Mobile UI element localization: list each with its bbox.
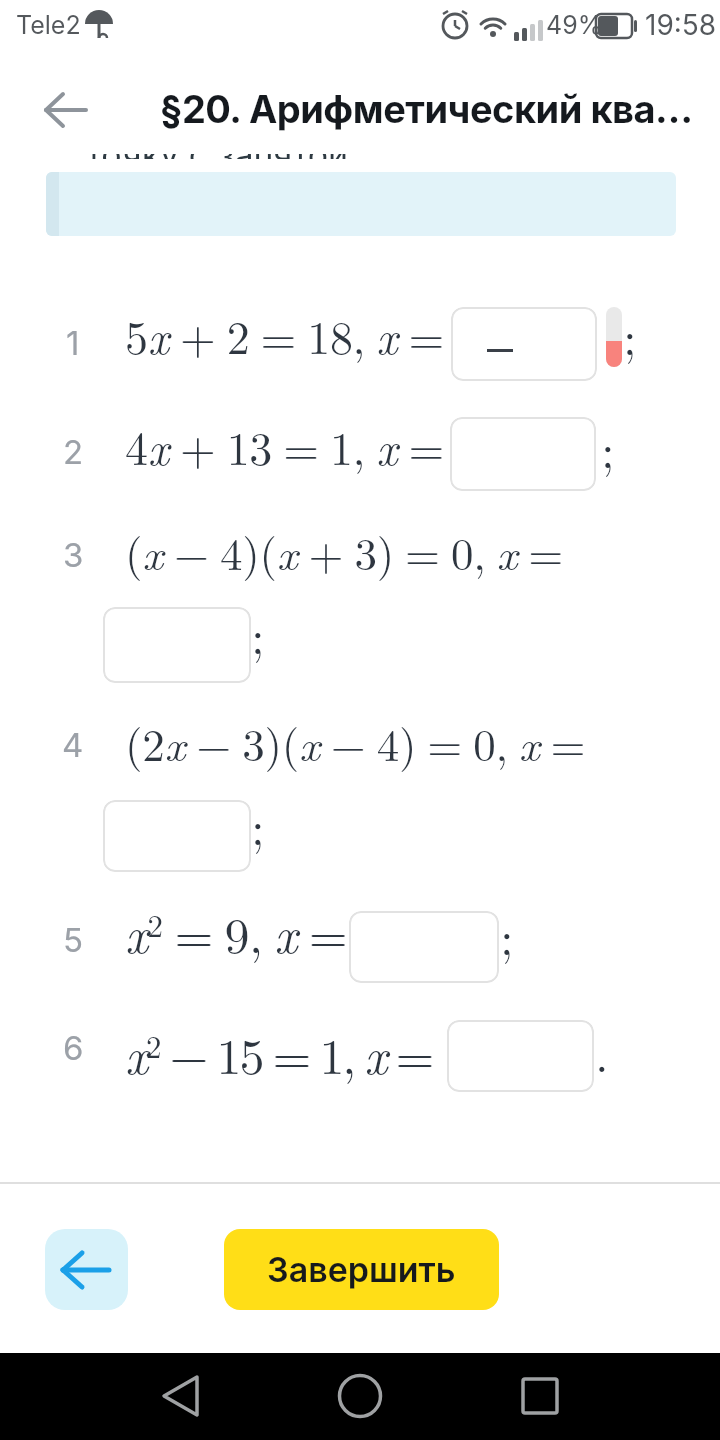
button[interactable]: Завершить (224, 1229, 499, 1310)
button[interactable] (120, 1353, 280, 1440)
staticText: ; (601, 413, 615, 482)
staticText: Завершить (267, 1249, 456, 1290)
button[interactable] (451, 307, 597, 381)
staticText: 5 (63, 920, 84, 960)
staticText: x2 − 15 = 1, x = (125, 1018, 433, 1089)
staticText: §20. Арифметический ква… (160, 86, 693, 132)
button[interactable] (45, 1229, 128, 1310)
staticText: ; (623, 300, 637, 369)
staticText: точку с запятой. (86, 154, 358, 159)
staticText: ; (251, 599, 265, 668)
button[interactable] (103, 607, 251, 683)
staticText: ; (500, 900, 514, 969)
button[interactable] (30, 80, 100, 140)
staticText: 2 (63, 432, 84, 472)
staticText: ; (251, 790, 265, 859)
button[interactable] (280, 1353, 440, 1440)
staticText: . (595, 1017, 609, 1086)
staticText: 4 (62, 725, 84, 765)
staticText: x2 = 9, x = (125, 897, 347, 968)
staticText: 4x + 13 = 1, x = (125, 413, 445, 478)
button[interactable] (349, 911, 499, 983)
staticText: (x − 4)(x + 3) = 0, x = (125, 519, 564, 583)
button[interactable] (447, 1020, 594, 1092)
staticText: (2x − 3)(x − 4) = 0, x = (125, 710, 586, 774)
staticText: 5x + 2 = 18, x = (125, 302, 445, 367)
staticText: 3 (63, 535, 84, 575)
button[interactable] (103, 800, 251, 872)
button[interactable] (450, 417, 596, 491)
staticText: Tele2 (16, 10, 81, 40)
staticText: 6 (63, 1028, 84, 1068)
staticText: 1 (66, 323, 80, 363)
button[interactable] (440, 1353, 600, 1440)
staticText: 49% (546, 10, 603, 40)
staticText: 19:58 (645, 8, 717, 42)
